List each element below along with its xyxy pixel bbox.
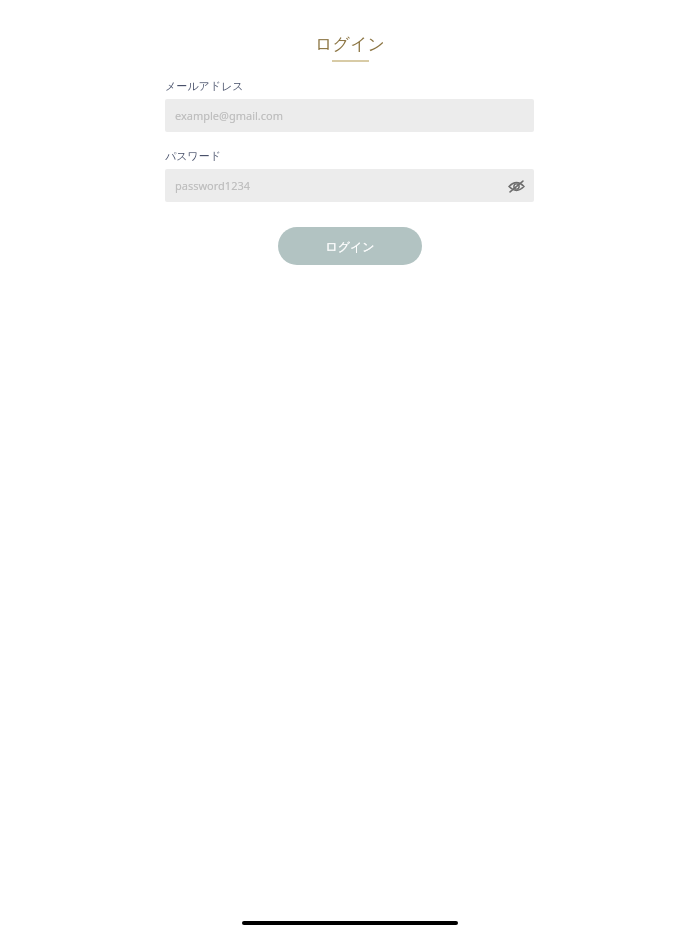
button[interactable]: Show password	[504, 174, 528, 198]
button[interactable]: example@gmail.com	[165, 99, 534, 132]
staticText: password1234	[175, 178, 504, 193]
staticText: ログイン	[315, 34, 385, 55]
staticText: example@gmail.com	[175, 108, 284, 123]
staticText: パスワード	[165, 149, 222, 163]
staticText: メールアドレス	[165, 79, 244, 93]
button[interactable]: password1234	[165, 169, 534, 202]
button[interactable]: ログイン	[278, 227, 422, 265]
staticText: ログイン	[325, 239, 375, 254]
